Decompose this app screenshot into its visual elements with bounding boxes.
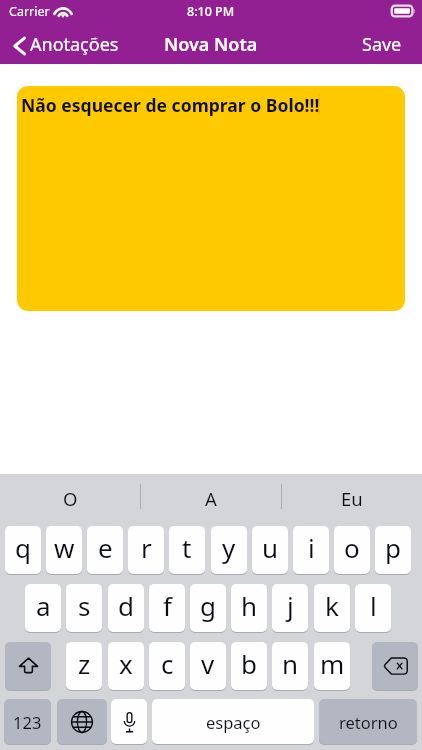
staticText: 8:10 PM bbox=[187, 3, 235, 20]
button[interactable]: g bbox=[190, 584, 226, 632]
staticText: 123 bbox=[13, 711, 42, 733]
staticText: r bbox=[141, 530, 152, 565]
staticText: retorno bbox=[339, 711, 398, 733]
button[interactable]: Save bbox=[342, 26, 422, 62]
staticText: c bbox=[161, 646, 174, 681]
staticText: d bbox=[118, 588, 134, 623]
staticText: v bbox=[201, 646, 215, 681]
button[interactable]: Eu bbox=[281, 480, 422, 516]
staticText: h bbox=[241, 588, 258, 623]
button[interactable]: u bbox=[252, 526, 288, 574]
button[interactable]: s bbox=[66, 584, 102, 632]
staticText: s bbox=[78, 588, 91, 623]
staticText: f bbox=[163, 588, 172, 623]
button[interactable]: d bbox=[108, 584, 144, 632]
button[interactable]: c bbox=[149, 642, 185, 690]
button[interactable]: o bbox=[334, 526, 370, 574]
staticText: Save bbox=[362, 32, 402, 57]
button[interactable]: Não esquecer de comprar o Bolo!!! bbox=[17, 86, 405, 311]
staticText: Nova Nota bbox=[164, 32, 258, 57]
button[interactable]: e bbox=[87, 526, 123, 574]
button[interactable]: Dictation bbox=[111, 699, 147, 744]
staticText: z bbox=[78, 646, 91, 681]
button[interactable]: Shift bbox=[5, 642, 51, 690]
staticText: g bbox=[200, 588, 216, 623]
staticText: e bbox=[98, 530, 113, 565]
button[interactable]: x bbox=[108, 642, 144, 690]
button[interactable]: w bbox=[46, 526, 82, 574]
staticText: t bbox=[182, 530, 192, 565]
staticText: Anotações bbox=[30, 32, 119, 57]
staticText: A bbox=[205, 486, 217, 511]
button[interactable]: espaço bbox=[152, 699, 314, 744]
staticText: O bbox=[63, 486, 78, 511]
button[interactable]: v bbox=[190, 642, 226, 690]
staticText: j bbox=[287, 588, 294, 623]
button[interactable]: retorno bbox=[319, 699, 417, 744]
button[interactable]: k bbox=[314, 584, 350, 632]
staticText: n bbox=[282, 646, 299, 681]
button[interactable]: 123 bbox=[4, 699, 51, 744]
button[interactable]: a bbox=[25, 584, 61, 632]
staticText: y bbox=[222, 530, 236, 565]
staticText: l bbox=[370, 588, 377, 623]
staticText: Carrier bbox=[9, 3, 50, 20]
staticText: Eu bbox=[341, 486, 363, 511]
staticText: m bbox=[320, 646, 345, 681]
button[interactable]: l bbox=[355, 584, 391, 632]
staticText: espaço bbox=[206, 711, 261, 733]
button[interactable]: Next keyboard bbox=[57, 699, 107, 744]
button[interactable]: i bbox=[293, 526, 329, 574]
button[interactable]: t bbox=[169, 526, 205, 574]
button[interactable]: q bbox=[5, 526, 41, 574]
staticText: i bbox=[308, 530, 315, 565]
staticText: w bbox=[54, 530, 75, 565]
button[interactable]: b bbox=[231, 642, 267, 690]
button[interactable]: y bbox=[211, 526, 247, 574]
staticText: p bbox=[385, 530, 401, 565]
staticText: q bbox=[15, 530, 31, 565]
button[interactable]: z bbox=[66, 642, 102, 690]
staticText: k bbox=[325, 588, 339, 623]
button[interactable]: Backspace bbox=[372, 642, 418, 690]
button[interactable]: Anotações bbox=[0, 26, 129, 62]
button[interactable]: r bbox=[128, 526, 164, 574]
button[interactable]: A bbox=[140, 480, 281, 516]
staticText: a bbox=[36, 588, 51, 623]
staticText: b bbox=[241, 646, 257, 681]
button[interactable]: f bbox=[149, 584, 185, 632]
staticText: o bbox=[344, 530, 360, 565]
button[interactable]: O bbox=[0, 480, 140, 516]
staticText: Não esquecer de comprar o Bolo!!! bbox=[21, 93, 320, 117]
staticText: x bbox=[119, 646, 133, 681]
button[interactable]: j bbox=[272, 584, 308, 632]
button[interactable]: n bbox=[272, 642, 308, 690]
staticText: u bbox=[262, 530, 279, 565]
button[interactable]: h bbox=[231, 584, 267, 632]
button[interactable]: m bbox=[314, 642, 350, 690]
button[interactable]: p bbox=[375, 526, 411, 574]
